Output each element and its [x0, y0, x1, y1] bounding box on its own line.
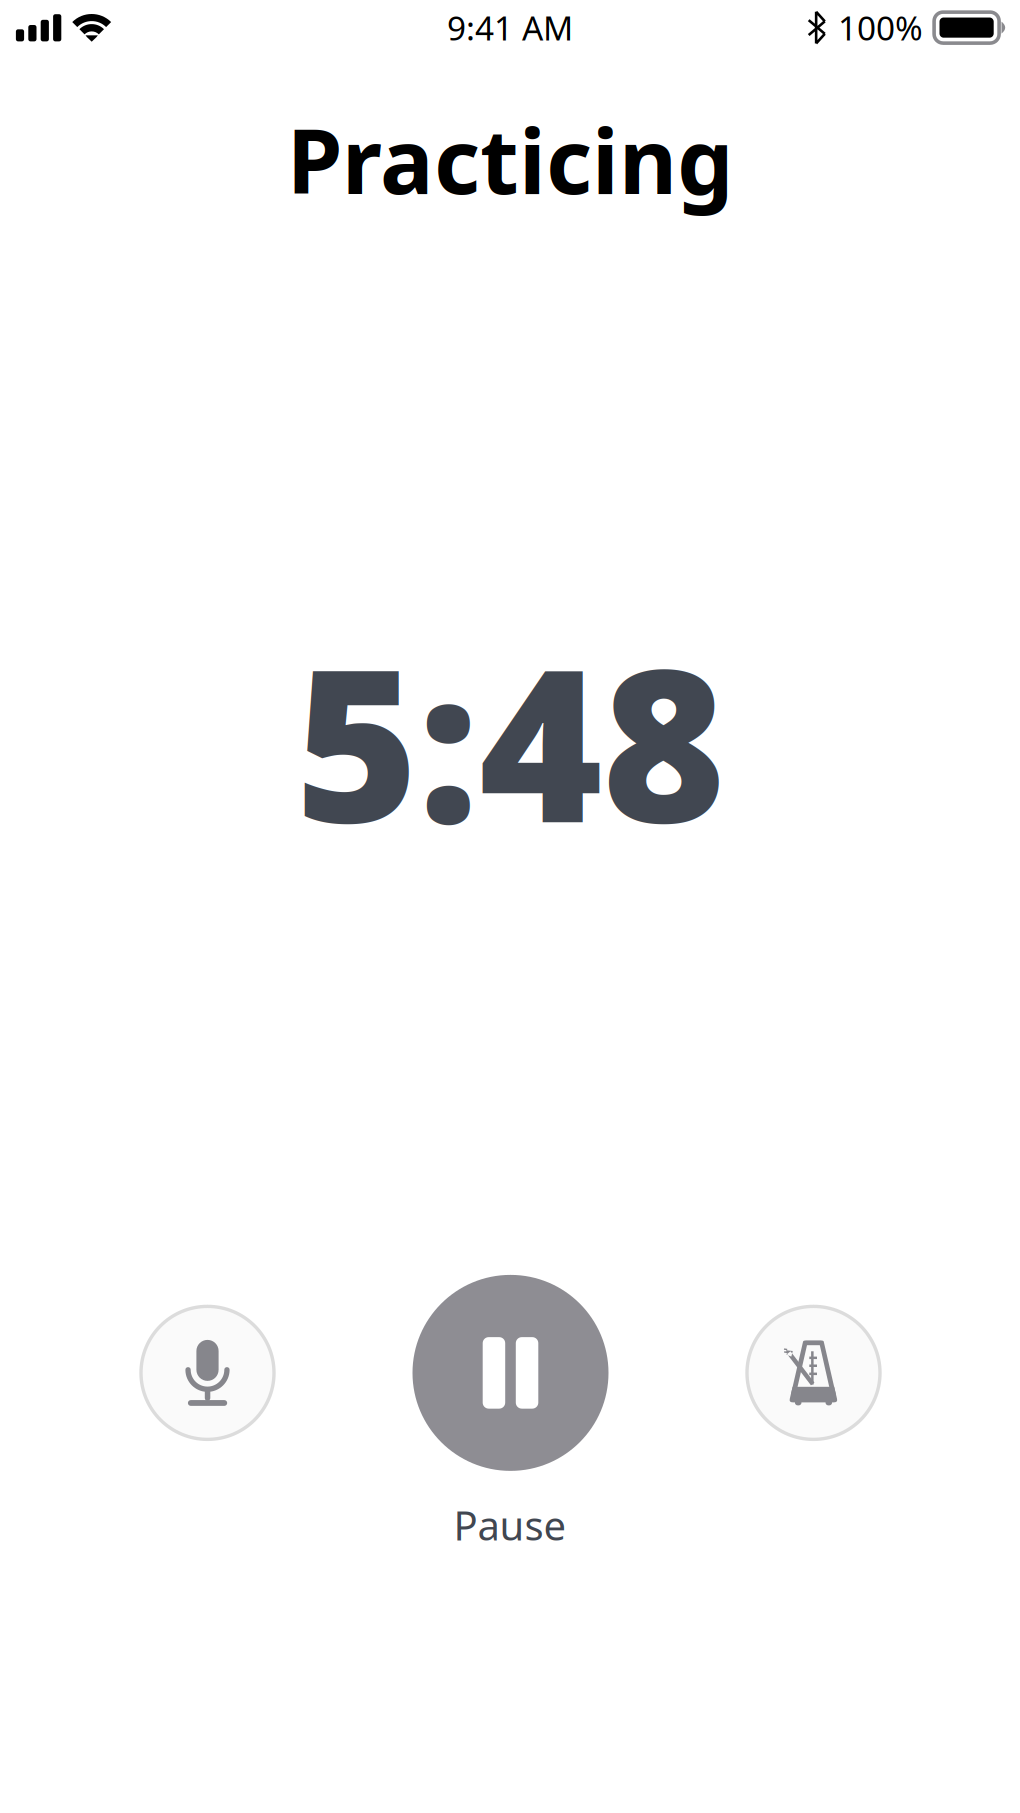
staticText: Practicing [287, 100, 733, 219]
button[interactable]: Metronome [747, 1306, 880, 1439]
button[interactable]: Pause [412, 1275, 608, 1471]
button[interactable]: Record audio [141, 1306, 274, 1439]
staticText: 100% [838, 5, 923, 50]
staticText: Pause [453, 1498, 566, 1551]
staticText: 9:41 AM [447, 5, 573, 50]
staticText: 5:48 [295, 601, 725, 880]
